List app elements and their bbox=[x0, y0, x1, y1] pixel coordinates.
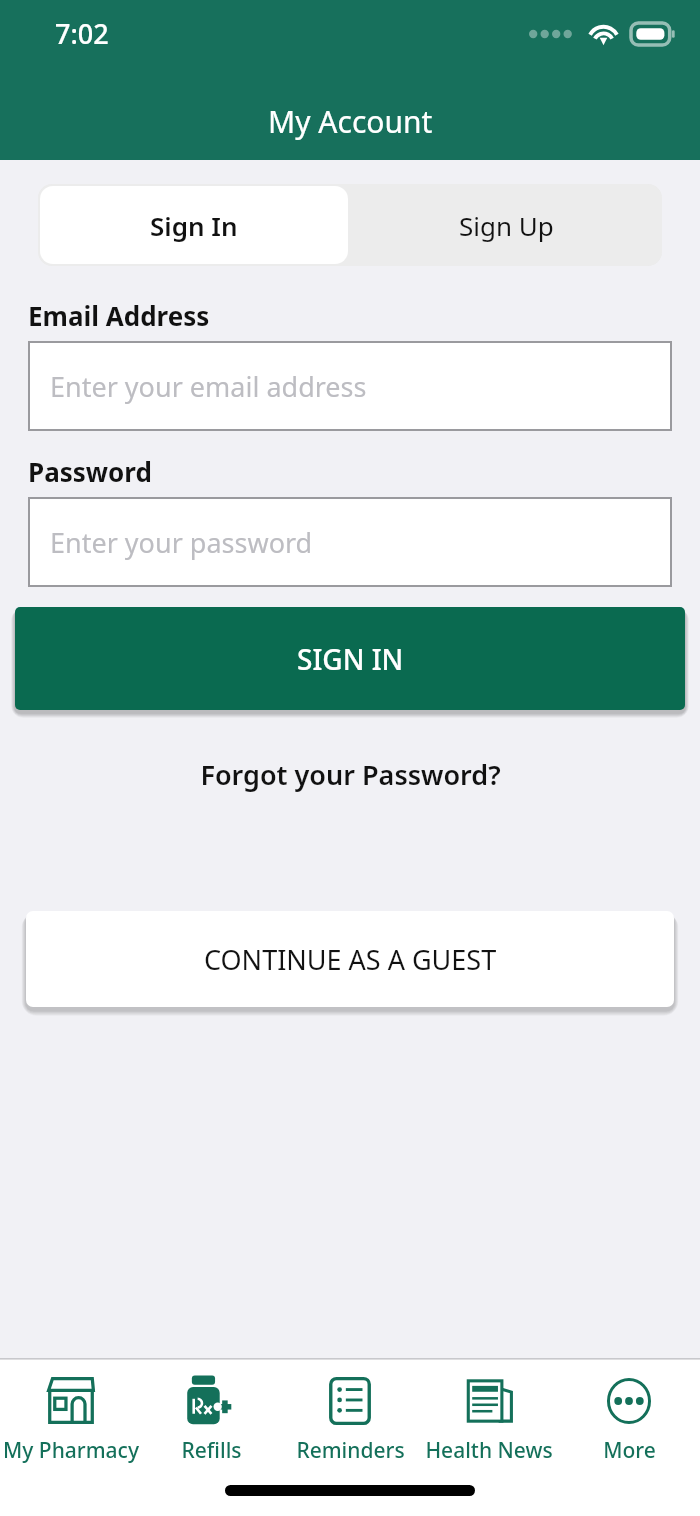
staticText: Enter your password bbox=[50, 524, 313, 561]
button[interactable]: Health News bbox=[421, 1366, 557, 1469]
button[interactable]: CONTINUE AS A GUEST bbox=[26, 911, 674, 1007]
staticText: More bbox=[603, 1436, 656, 1465]
button[interactable]: Reminders bbox=[282, 1366, 418, 1469]
button[interactable]: Refills bbox=[143, 1366, 279, 1469]
staticText: Health News bbox=[425, 1436, 553, 1465]
staticText: Email Address bbox=[28, 298, 210, 333]
button[interactable]: My Pharmacy bbox=[3, 1366, 139, 1469]
staticText: 7:02 bbox=[55, 15, 109, 52]
staticText: Password bbox=[28, 454, 152, 489]
other: My Pharmacy bbox=[43, 1373, 99, 1429]
button[interactable]: Forgot your Password? bbox=[184, 750, 517, 799]
button[interactable]: More bbox=[561, 1366, 697, 1469]
staticText: Sign In bbox=[150, 208, 238, 243]
other: More bbox=[602, 1374, 656, 1428]
staticText: Refills bbox=[181, 1436, 242, 1465]
button[interactable]: Sign In bbox=[40, 186, 348, 264]
staticText: Enter your email address bbox=[50, 368, 367, 405]
other: Reminders bbox=[324, 1375, 376, 1427]
button[interactable]: Enter your email address bbox=[28, 341, 672, 431]
staticText: My Account bbox=[268, 101, 433, 142]
staticText: SIGN IN bbox=[297, 640, 404, 678]
other: Refills bbox=[182, 1372, 240, 1430]
button[interactable]: SIGN IN bbox=[15, 607, 685, 710]
staticText: CONTINUE AS A GUEST bbox=[204, 941, 497, 978]
button[interactable]: Sign Up bbox=[350, 184, 662, 266]
button[interactable]: Enter your password bbox=[28, 497, 672, 587]
staticText: Sign Up bbox=[459, 208, 554, 243]
staticText: Reminders bbox=[296, 1436, 405, 1465]
other: Health News bbox=[461, 1373, 517, 1429]
staticText: My Pharmacy bbox=[3, 1436, 139, 1465]
